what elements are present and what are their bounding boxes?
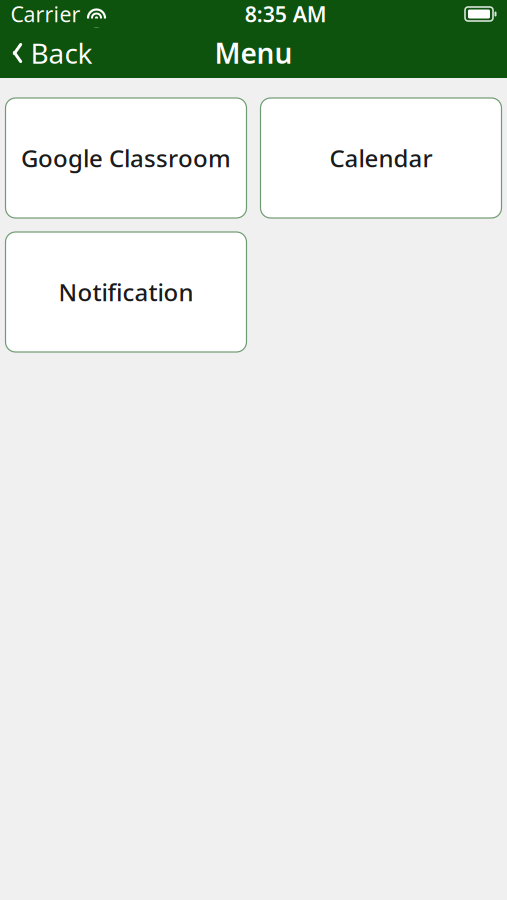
- staticText: 8:35 AM: [245, 0, 327, 28]
- staticText: Carrier: [10, 0, 80, 28]
- button[interactable]: Calendar: [260, 98, 501, 218]
- staticText: Google Classroom: [21, 142, 231, 174]
- staticText: Notification: [58, 276, 193, 308]
- button[interactable]: Google Classroom: [5, 98, 246, 218]
- staticText: Back: [30, 34, 92, 72]
- button[interactable]: Notification: [5, 232, 246, 352]
- button[interactable]: Back: [0, 28, 102, 78]
- staticText: Menu: [214, 34, 292, 72]
- staticText: Calendar: [329, 142, 432, 174]
